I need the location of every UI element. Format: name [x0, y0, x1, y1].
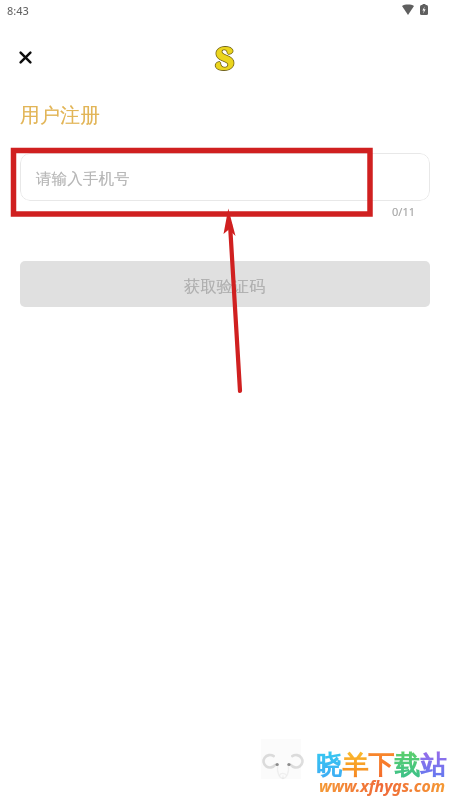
staticText: 请输入手机号: [36, 169, 130, 189]
staticText: 用户注册: [20, 103, 100, 128]
staticText: S: [214, 36, 234, 80]
staticText: 载: [394, 749, 420, 782]
staticText: 0/11: [392, 204, 415, 219]
staticText: 晓: [316, 749, 342, 782]
staticText: 站: [420, 749, 446, 782]
staticText: 下: [368, 749, 394, 782]
staticText: 羊: [342, 749, 368, 782]
staticText: S: [215, 36, 235, 80]
staticText: S: [215, 37, 235, 81]
button[interactable]: 获取验证码: [20, 261, 430, 307]
staticText: 8:43: [7, 3, 29, 18]
staticText: S: [216, 36, 236, 80]
staticText: S: [215, 35, 235, 79]
button[interactable]: 请输入手机号: [20, 153, 430, 201]
staticText: 获取验证码: [184, 276, 266, 297]
button[interactable]: Close: [8, 40, 42, 74]
staticText: www.xfhygs.com: [319, 775, 445, 797]
